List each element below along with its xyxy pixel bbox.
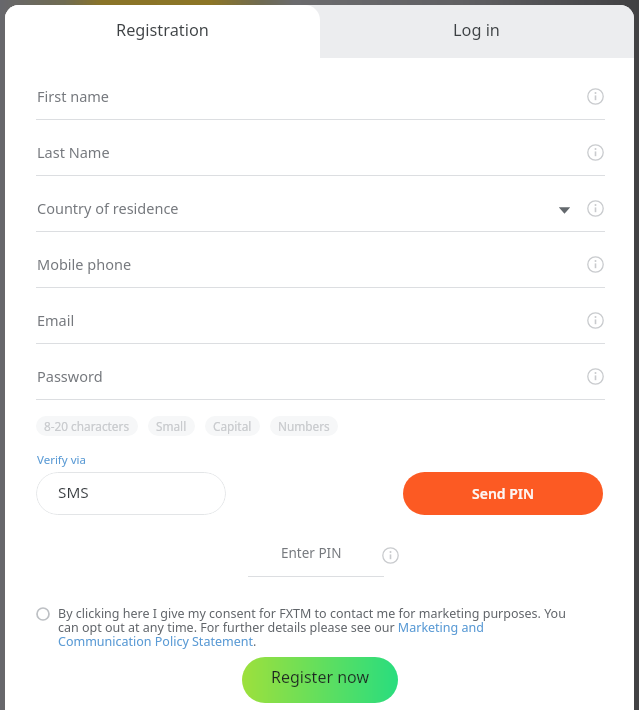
staticText: 8-20 characters: [44, 418, 130, 434]
button[interactable]: Log in: [5, 5, 634, 58]
button[interactable]: 8-20 characters: [36, 416, 138, 436]
staticText: Country of residence: [37, 198, 179, 218]
staticText: Mobile phone: [37, 254, 132, 274]
button[interactable]: Mobile phone: [5, 232, 634, 288]
other: Select country: [558, 203, 571, 216]
staticText: Email: [37, 310, 75, 330]
button[interactable]: Registration: [5, 5, 320, 58]
staticText: By clicking here I give my consent for F…: [58, 605, 573, 650]
button[interactable]: Send PIN: [403, 472, 603, 515]
staticText: Registration: [116, 19, 209, 41]
staticText: Log in: [453, 19, 500, 41]
button[interactable]: Small: [148, 416, 195, 436]
button[interactable]: Capital: [205, 416, 260, 436]
staticText: Send PIN: [472, 484, 535, 503]
button[interactable]: Country of residence: [5, 176, 634, 232]
button[interactable]: Password: [5, 344, 634, 400]
staticText: SMS: [58, 482, 89, 503]
button[interactable]: Register now: [242, 657, 398, 703]
staticText: Small: [156, 418, 187, 434]
button[interactable]: Numbers: [270, 416, 338, 436]
other: Consent checkbox: [36, 607, 50, 621]
button[interactable]: First name: [5, 64, 634, 120]
button[interactable]: Enter PIN: [281, 544, 342, 562]
button[interactable]: Last Name: [5, 120, 634, 176]
button[interactable]: SMS: [36, 472, 226, 515]
staticText: Verify via: [37, 452, 86, 468]
staticText: Last Name: [37, 142, 110, 162]
staticText: Capital: [213, 418, 252, 434]
staticText: First name: [37, 86, 110, 106]
staticText: Register now: [271, 666, 370, 688]
staticText: Numbers: [278, 418, 330, 434]
staticText: Password: [37, 366, 103, 386]
button[interactable]: Email: [5, 288, 634, 344]
button[interactable]: Consent checkbox: [36, 605, 573, 650]
